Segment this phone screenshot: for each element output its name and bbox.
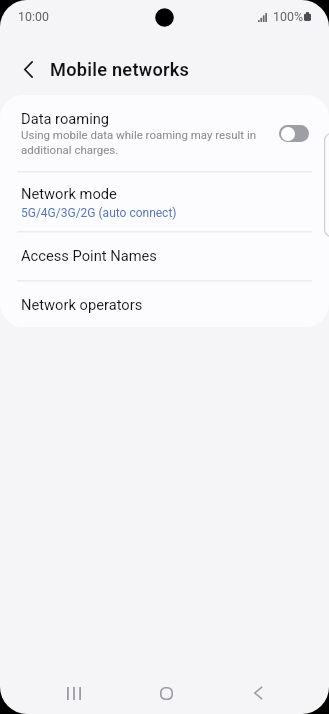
button[interactable]: Network mode	[0, 173, 329, 231]
button[interactable]: Back	[236, 671, 280, 714]
staticText: Access Point Names	[21, 247, 157, 264]
staticText: Using mobile data while roaming may resu…	[21, 128, 261, 158]
staticText: 10:00	[18, 9, 49, 24]
staticText: Mobile networks	[50, 59, 190, 80]
staticText: Network operators	[21, 296, 143, 313]
staticText: 100%	[273, 9, 303, 24]
button[interactable]: Network operators	[0, 282, 329, 327]
button[interactable]: Navigate up	[10, 52, 44, 86]
button[interactable]: Data roaming	[279, 125, 309, 142]
staticText: 5G/4G/3G/2G (auto connect)	[21, 206, 177, 220]
button[interactable]: Access Point Names	[0, 233, 329, 281]
staticText: Data roaming	[21, 110, 110, 127]
button[interactable]: Home	[144, 671, 188, 714]
button[interactable]: Data roaming	[0, 95, 329, 172]
staticText: Network mode	[21, 185, 117, 202]
button[interactable]: Recent apps	[52, 671, 96, 714]
